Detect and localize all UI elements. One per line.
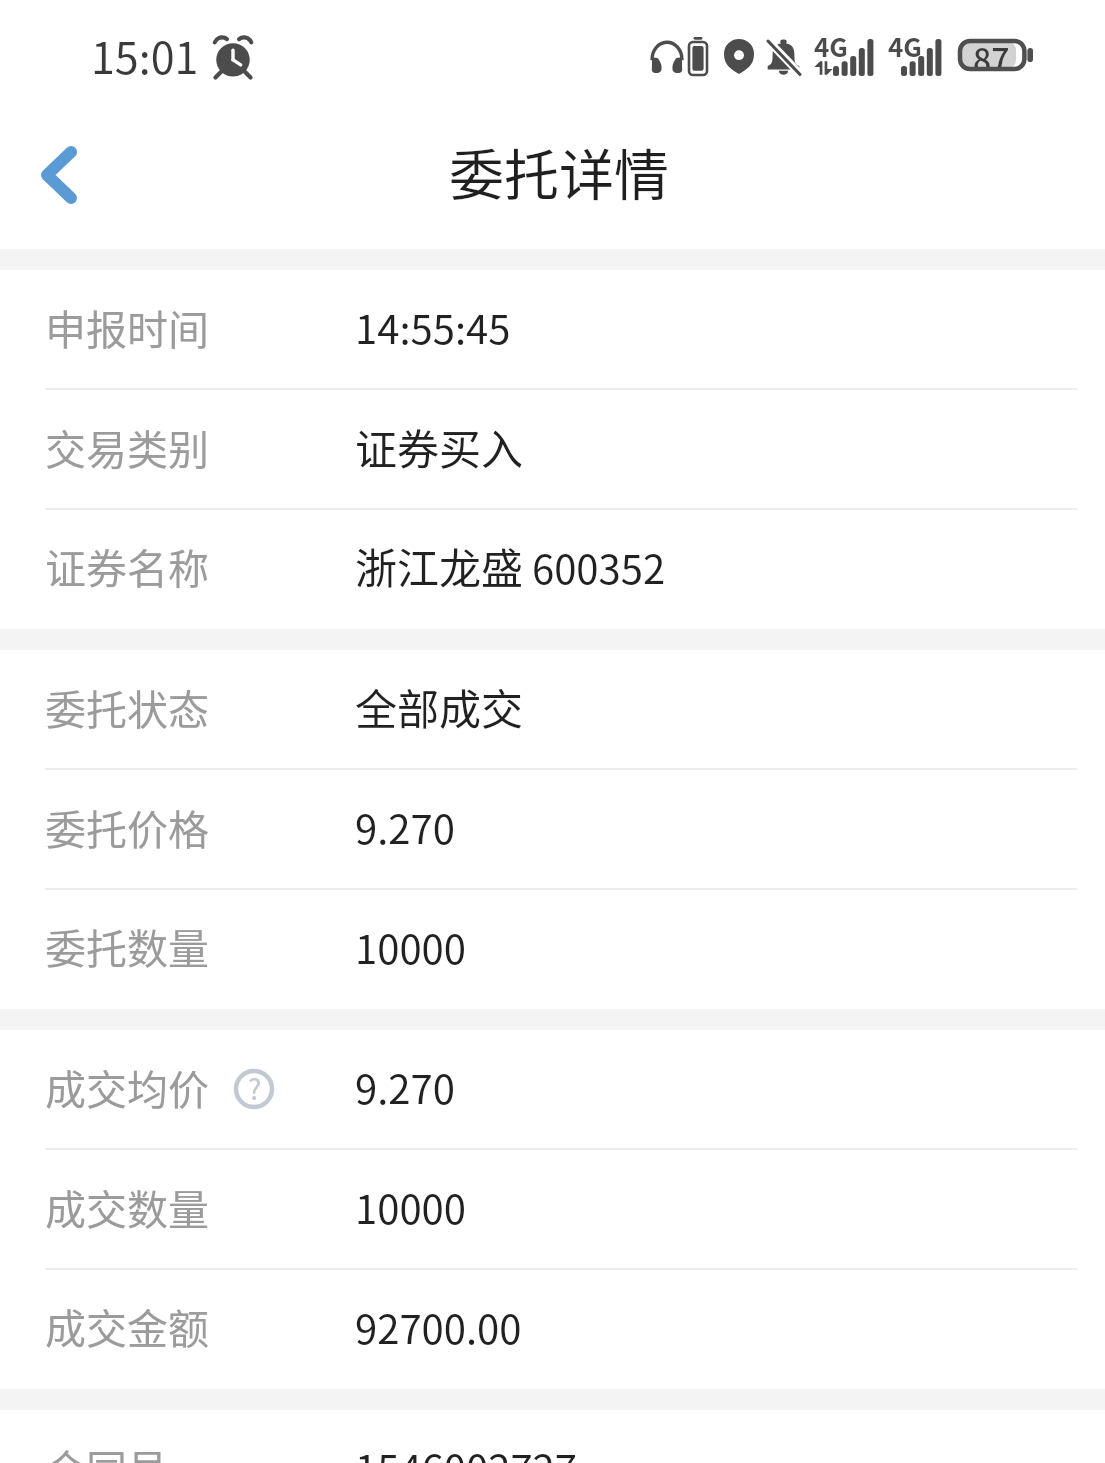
staticText: 全部成交 <box>355 676 524 737</box>
staticText: 证券名称 <box>45 536 209 595</box>
button[interactable]: 委托价格 <box>0 770 1105 890</box>
button[interactable]: 委托数量 <box>0 890 1105 1009</box>
button[interactable]: 委托状态 <box>0 650 1105 770</box>
staticText: 14:55:45 <box>355 298 511 356</box>
staticText: 委托详情 <box>449 131 670 211</box>
staticText: 申报时间 <box>45 297 209 356</box>
staticText: 合同号 <box>45 1437 168 1463</box>
staticText: 委托状态 <box>45 677 209 736</box>
staticText: ? <box>248 1068 262 1108</box>
staticText: 成交均价 <box>45 1057 209 1116</box>
staticText: 浙江龙盛 600352 <box>355 535 666 596</box>
staticText: 委托数量 <box>45 916 209 975</box>
button[interactable]: Back <box>0 115 118 245</box>
staticText: 10000 <box>355 1178 466 1236</box>
button[interactable]: 证券名称 <box>0 510 1105 629</box>
button[interactable]: 合同号 <box>0 1410 1105 1463</box>
staticText: 4G <box>814 27 848 65</box>
staticText: 9.270 <box>355 1058 455 1116</box>
staticText: 交易类别 <box>45 417 209 476</box>
button[interactable]: What is average fill price? <box>234 1069 274 1109</box>
button[interactable]: 成交金额 <box>0 1270 1105 1389</box>
staticText: 9.270 <box>355 798 455 856</box>
button[interactable]: 申报时间 <box>0 270 1105 390</box>
staticText: 证券买入 <box>355 416 524 477</box>
staticText: 成交数量 <box>45 1177 209 1236</box>
staticText: 成交金额 <box>45 1296 209 1355</box>
staticText: 15:01 <box>91 24 199 86</box>
staticText: 1546002727 <box>355 1438 577 1463</box>
staticText: 92700.00 <box>355 1298 522 1356</box>
staticText: 87 <box>973 35 1010 67</box>
staticText: 委托价格 <box>45 797 209 856</box>
button[interactable]: 成交数量 <box>0 1150 1105 1270</box>
staticText: 4G <box>888 27 922 65</box>
staticText: 10000 <box>355 918 466 976</box>
button[interactable]: 交易类别 <box>0 390 1105 510</box>
button[interactable]: 成交均价 <box>0 1030 1105 1150</box>
